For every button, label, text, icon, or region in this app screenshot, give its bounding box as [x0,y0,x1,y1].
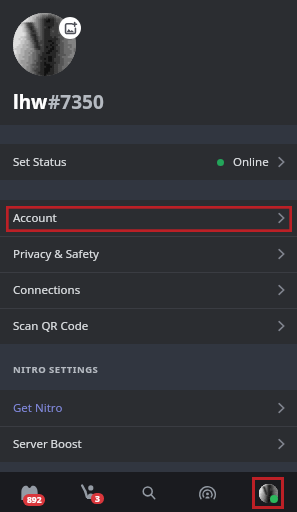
button[interactable]: Change avatar [59,17,81,39]
staticText: lhw [13,89,48,115]
button[interactable]: Connections [0,272,297,308]
staticText: Get Nitro [13,400,63,416]
button[interactable]: Account [0,200,297,236]
button[interactable]: Friends [69,474,107,509]
button[interactable]: Servers [9,475,50,510]
button[interactable]: You [252,477,284,509]
staticText: Account [13,210,57,226]
button[interactable]: Profile picture [13,13,76,76]
button[interactable]: Mentions [187,476,228,512]
staticText: Scan QR Code [13,318,89,334]
button[interactable]: Search [129,475,169,511]
button[interactable]: Get Nitro [0,390,297,426]
button[interactable]: Set Status [0,144,297,180]
button[interactable]: Server Boost [0,426,297,462]
staticText: 892 [27,494,42,506]
staticText: Online [233,154,269,170]
staticText: Set Status [13,154,67,170]
staticText: 3 [95,493,100,504]
staticText: Connections [13,282,81,298]
staticText: NITRO SETTINGS [13,363,99,376]
staticText: #7350 [48,89,104,115]
staticText: Server Boost [13,436,82,452]
button[interactable]: Scan QR Code [0,308,297,344]
button[interactable]: Privacy & Safety [0,236,297,272]
staticText: Privacy & Safety [13,246,99,262]
